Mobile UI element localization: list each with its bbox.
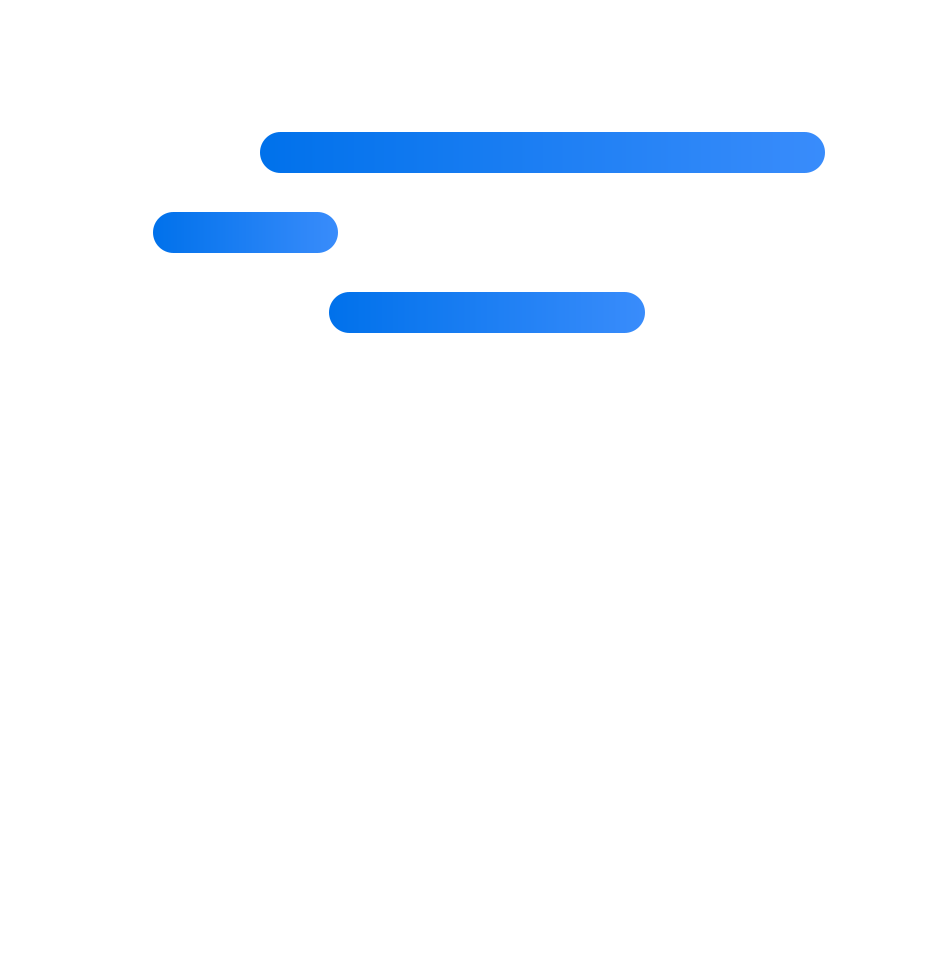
button[interactable]: Task 2 xyxy=(153,212,338,253)
button[interactable]: Task 3 xyxy=(329,292,645,333)
button[interactable]: Task 1 xyxy=(260,132,825,173)
